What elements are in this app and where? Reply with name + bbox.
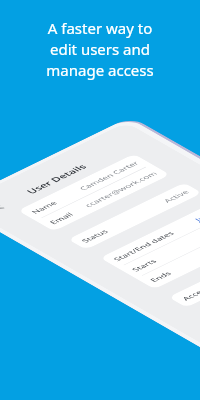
button[interactable]: Status: [68, 183, 200, 250]
staticText: Name: [29, 200, 59, 215]
button[interactable]: Name: [17, 154, 152, 221]
staticText: Start/End dates: [111, 230, 176, 262]
staticText: Active: [161, 188, 191, 204]
button[interactable]: Start/End dates: [100, 201, 200, 268]
staticText: Ends: [147, 270, 173, 283]
button[interactable]: Starts: [118, 211, 200, 279]
staticText: Starts: [129, 258, 159, 273]
button[interactable]: Back: [0, 201, 13, 214]
button[interactable]: Email: [36, 164, 170, 231]
staticText: Access: [179, 285, 200, 302]
staticText: Camden Carter: [77, 160, 141, 192]
staticText: ccarter@work.com: [82, 170, 159, 208]
staticText: Status: [79, 228, 110, 244]
staticText: A faster way to edit users and manage ac…: [46, 18, 154, 81]
button[interactable]: Access: [168, 240, 200, 308]
staticText: User Details: [23, 162, 90, 196]
staticText: Email: [47, 211, 75, 226]
staticText: Jun 20: [192, 207, 200, 223]
button[interactable]: Ends: [136, 222, 200, 289]
